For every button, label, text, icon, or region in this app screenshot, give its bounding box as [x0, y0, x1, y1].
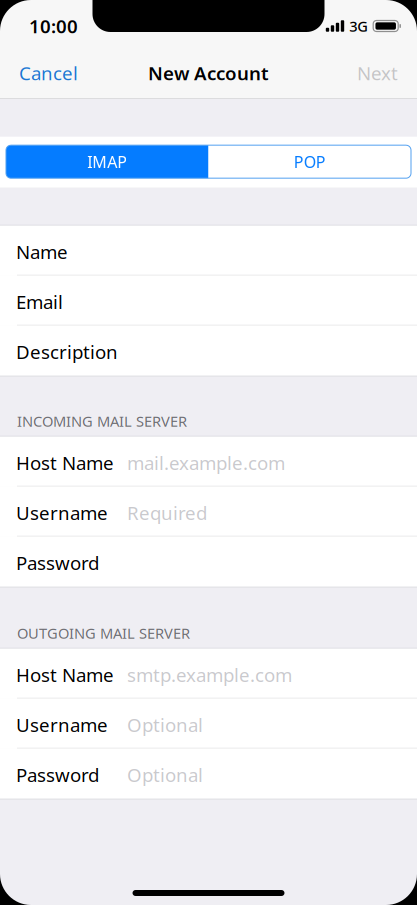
staticText: INCOMING MAIL SERVER — [17, 411, 187, 431]
staticText: mail.example.com — [127, 450, 285, 475]
button[interactable]: IMAP — [6, 145, 208, 178]
staticText: Username — [16, 500, 108, 525]
staticText: Optional — [127, 762, 203, 787]
button[interactable]: POP — [208, 145, 411, 178]
staticText: IMAP — [87, 151, 127, 172]
staticText: Cancel — [19, 61, 78, 85]
staticText: Email — [16, 289, 63, 314]
button[interactable]: Cancel — [0, 51, 92, 95]
staticText: Description — [16, 339, 118, 364]
staticText: Next — [357, 61, 398, 85]
staticText: OUTGOING MAIL SERVER — [17, 623, 190, 643]
button[interactable]: Username — [0, 699, 417, 749]
staticText: Required — [127, 500, 207, 525]
staticText: 10:00 — [29, 14, 78, 38]
staticText: Password — [16, 550, 99, 575]
staticText: Name — [16, 239, 68, 264]
button[interactable]: Name — [0, 226, 417, 276]
button[interactable]: Password — [0, 749, 417, 799]
button[interactable]: Username — [0, 487, 417, 537]
staticText: 3G — [349, 16, 368, 36]
staticText: smtp.example.com — [127, 662, 292, 687]
staticText: Username — [16, 712, 108, 737]
staticText: Optional — [127, 712, 203, 737]
button[interactable]: Email — [0, 276, 417, 326]
staticText: New Account — [148, 61, 269, 85]
staticText: Password — [16, 762, 99, 787]
button[interactable]: Host Name — [0, 649, 417, 699]
button[interactable]: Next — [343, 51, 417, 95]
button[interactable]: Description — [0, 326, 417, 376]
staticText: Host Name — [16, 662, 114, 687]
staticText: Host Name — [16, 450, 114, 475]
staticText: POP — [294, 151, 326, 172]
button[interactable]: Password — [0, 537, 417, 587]
button[interactable]: Host Name — [0, 437, 417, 487]
